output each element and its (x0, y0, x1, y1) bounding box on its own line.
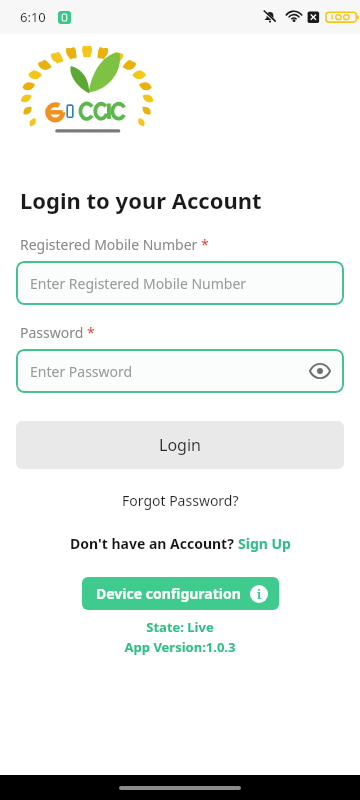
staticText: Login to your Account (20, 185, 262, 215)
staticText: Enter Password (30, 362, 133, 381)
button[interactable]: Enter Password (16, 349, 344, 393)
staticText: 6:10 (20, 8, 46, 26)
staticText: Don't have an Account? (70, 534, 238, 553)
staticText: Device configuration (96, 584, 241, 603)
staticText: i (257, 586, 262, 602)
staticText: Sign Up (238, 534, 291, 553)
staticText: Login (159, 434, 201, 456)
staticText: App Version:1.0.3 (0, 638, 360, 656)
staticText: Password * (20, 323, 95, 342)
button[interactable]: Device configuration (82, 577, 279, 610)
button[interactable]: Sign Up (238, 534, 291, 553)
button[interactable]: Show password (306, 357, 334, 385)
staticText: Registered Mobile Number * (20, 235, 209, 254)
staticText: State: Live (0, 618, 360, 636)
staticText: Forgot Password? (122, 491, 239, 510)
button[interactable]: Enter Registered Mobile Number (16, 261, 344, 305)
button[interactable]: Forgot Password? (112, 488, 249, 513)
staticText: Enter Registered Mobile Number (30, 274, 247, 293)
button[interactable]: Login (16, 421, 344, 469)
